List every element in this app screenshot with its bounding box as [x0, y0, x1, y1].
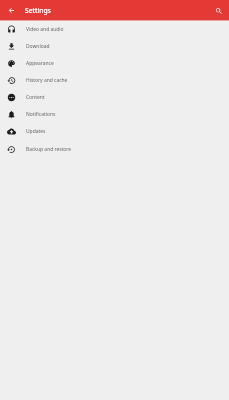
- staticText: Appearance: [26, 60, 54, 67]
- button[interactable]: Search: [213, 5, 225, 17]
- staticText: History and cache: [26, 77, 68, 84]
- staticText: Content: [26, 94, 45, 101]
- staticText: Settings: [25, 6, 51, 15]
- button[interactable]: Back: [4, 3, 18, 17]
- button[interactable]: Backup and restore: [0, 141, 229, 158]
- staticText: Video and audio: [26, 26, 64, 33]
- button[interactable]: Download: [0, 38, 229, 55]
- button[interactable]: Appearance: [0, 55, 229, 72]
- staticText: Download: [26, 43, 50, 50]
- button[interactable]: Notifications: [0, 106, 229, 123]
- button[interactable]: History and cache: [0, 72, 229, 89]
- button[interactable]: Content: [0, 89, 229, 106]
- button[interactable]: Video and audio: [0, 21, 229, 38]
- button[interactable]: Updates: [0, 123, 229, 140]
- staticText: Updates: [26, 128, 46, 135]
- staticText: Notifications: [26, 111, 56, 118]
- staticText: Backup and restore: [26, 146, 72, 153]
